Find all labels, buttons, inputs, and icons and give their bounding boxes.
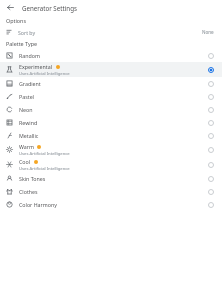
staticText: Clothes (19, 188, 38, 195)
button[interactable]: Warm (0, 142, 222, 157)
button[interactable]: Pastel (0, 90, 222, 103)
button[interactable]: Experimental (0, 62, 222, 77)
staticText: Uses Artificial Intelligence (19, 71, 70, 77)
staticText: Warm (19, 143, 34, 150)
staticText: Pastel (19, 93, 34, 100)
staticText: Cool (19, 158, 31, 165)
button[interactable]: Metallic (0, 129, 222, 142)
staticText: Metallic (19, 132, 39, 139)
staticText: None (202, 29, 214, 35)
staticText: Uses Artificial Intelligence (19, 151, 70, 157)
staticText: Skin Tones (19, 175, 46, 182)
button[interactable]: Rewind (0, 116, 222, 129)
staticText: Random (19, 52, 40, 59)
staticText: Experimental (19, 63, 53, 70)
staticText: Rewind (19, 119, 38, 126)
staticText: Options (6, 17, 27, 24)
button[interactable]: Back (4, 1, 17, 14)
button[interactable]: Neon (0, 103, 222, 116)
button[interactable]: Color Harmony (0, 198, 222, 211)
staticText: Gradient (19, 80, 41, 87)
staticText: Uses Artificial Intelligence (19, 166, 70, 172)
staticText: Color Harmony (19, 201, 57, 208)
staticText: Sort by (18, 29, 36, 36)
button[interactable]: Cool (0, 157, 222, 172)
staticText: Generator Settings (22, 4, 77, 12)
button[interactable]: Gradient (0, 77, 222, 90)
button[interactable]: Sort by (0, 26, 222, 38)
staticText: Palette Type (6, 40, 38, 47)
staticText: Neon (19, 106, 33, 113)
button[interactable]: Skin Tones (0, 172, 222, 185)
button[interactable]: Clothes (0, 185, 222, 198)
button[interactable]: Random (0, 49, 222, 62)
